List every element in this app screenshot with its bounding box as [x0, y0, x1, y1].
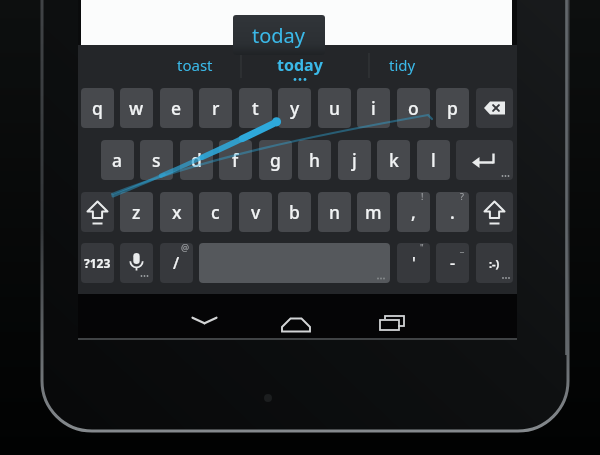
button[interactable]	[456, 140, 513, 180]
button[interactable]: p	[436, 88, 469, 128]
staticText: :-)	[489, 256, 500, 271]
staticText: "	[420, 241, 424, 253]
button[interactable]: f	[219, 140, 252, 180]
staticText: g	[270, 148, 281, 172]
button[interactable]: b	[278, 192, 311, 232]
button[interactable]: tidy	[342, 49, 462, 81]
staticText: q	[92, 96, 103, 120]
button[interactable]: today	[240, 49, 360, 81]
button[interactable]: h	[298, 140, 331, 180]
staticText: l	[431, 148, 436, 172]
staticText: today	[277, 54, 323, 76]
button[interactable]: t	[239, 88, 272, 128]
staticText: v	[251, 200, 261, 224]
button[interactable]: '	[397, 243, 430, 283]
staticText: @	[181, 241, 190, 253]
staticText: c	[211, 200, 220, 224]
button[interactable]: c	[199, 192, 232, 232]
button[interactable]	[186, 304, 223, 340]
button[interactable]	[476, 88, 513, 128]
staticText: f	[232, 148, 239, 172]
staticText: tidy	[389, 55, 416, 75]
button[interactable]: l	[417, 140, 450, 180]
staticText: toast	[177, 55, 213, 75]
staticText: !	[421, 190, 424, 202]
button[interactable]: .	[436, 192, 469, 232]
button[interactable]: w	[120, 88, 153, 128]
staticText: s	[152, 148, 161, 172]
staticText: m	[365, 200, 382, 224]
staticText: w	[129, 96, 144, 120]
staticText: t	[252, 96, 259, 120]
button[interactable]: x	[160, 192, 193, 232]
staticText: n	[329, 200, 340, 224]
staticText: today	[252, 22, 306, 49]
staticText: /	[173, 252, 180, 274]
staticText: b	[289, 200, 300, 224]
button[interactable]	[277, 304, 315, 340]
button[interactable]: j	[338, 140, 371, 180]
button[interactable]: a	[101, 140, 134, 180]
staticText: a	[112, 148, 123, 172]
staticText: j	[352, 148, 357, 172]
staticText: .	[450, 200, 455, 224]
staticText: k	[389, 148, 399, 172]
button[interactable]: ,	[397, 192, 430, 232]
button[interactable]	[476, 192, 513, 232]
button[interactable]: y	[278, 88, 311, 128]
button[interactable]: v	[239, 192, 272, 232]
button[interactable]	[373, 304, 411, 340]
button[interactable]: r	[199, 88, 232, 128]
staticText: ,	[411, 200, 416, 224]
staticText: ?	[460, 190, 464, 202]
staticText: d	[191, 148, 202, 172]
staticText: '	[412, 252, 416, 274]
staticText: o	[408, 96, 419, 120]
button[interactable]: k	[377, 140, 410, 180]
button[interactable]: today	[233, 15, 325, 55]
button[interactable]: -	[436, 243, 469, 283]
button[interactable]: /	[160, 243, 193, 283]
staticText: i	[371, 96, 376, 120]
staticText: z	[132, 200, 141, 224]
button[interactable]: e	[160, 88, 193, 128]
staticText: p	[447, 96, 458, 120]
staticText: -	[450, 252, 456, 274]
button[interactable]: i	[357, 88, 390, 128]
button[interactable]: ?123	[81, 243, 114, 283]
button[interactable]: m	[357, 192, 390, 232]
button[interactable]: toast	[135, 49, 255, 81]
button[interactable]: z	[120, 192, 153, 232]
button[interactable]: n	[318, 192, 351, 232]
staticText: r	[212, 96, 220, 120]
button[interactable]: q	[81, 88, 114, 128]
button[interactable]: u	[318, 88, 351, 128]
staticText: x	[172, 200, 182, 224]
staticText: e	[171, 96, 182, 120]
button[interactable]	[120, 243, 153, 283]
staticText: y	[290, 96, 300, 120]
button[interactable]: s	[140, 140, 173, 180]
button[interactable]: o	[397, 88, 430, 128]
button[interactable]: g	[259, 140, 292, 180]
button[interactable]: d	[180, 140, 213, 180]
button[interactable]	[81, 192, 114, 232]
staticText: ?123	[84, 255, 111, 271]
staticText: u	[329, 96, 340, 120]
staticText: _	[460, 241, 464, 253]
staticText: h	[309, 148, 320, 172]
button[interactable]: :-)	[476, 243, 513, 283]
